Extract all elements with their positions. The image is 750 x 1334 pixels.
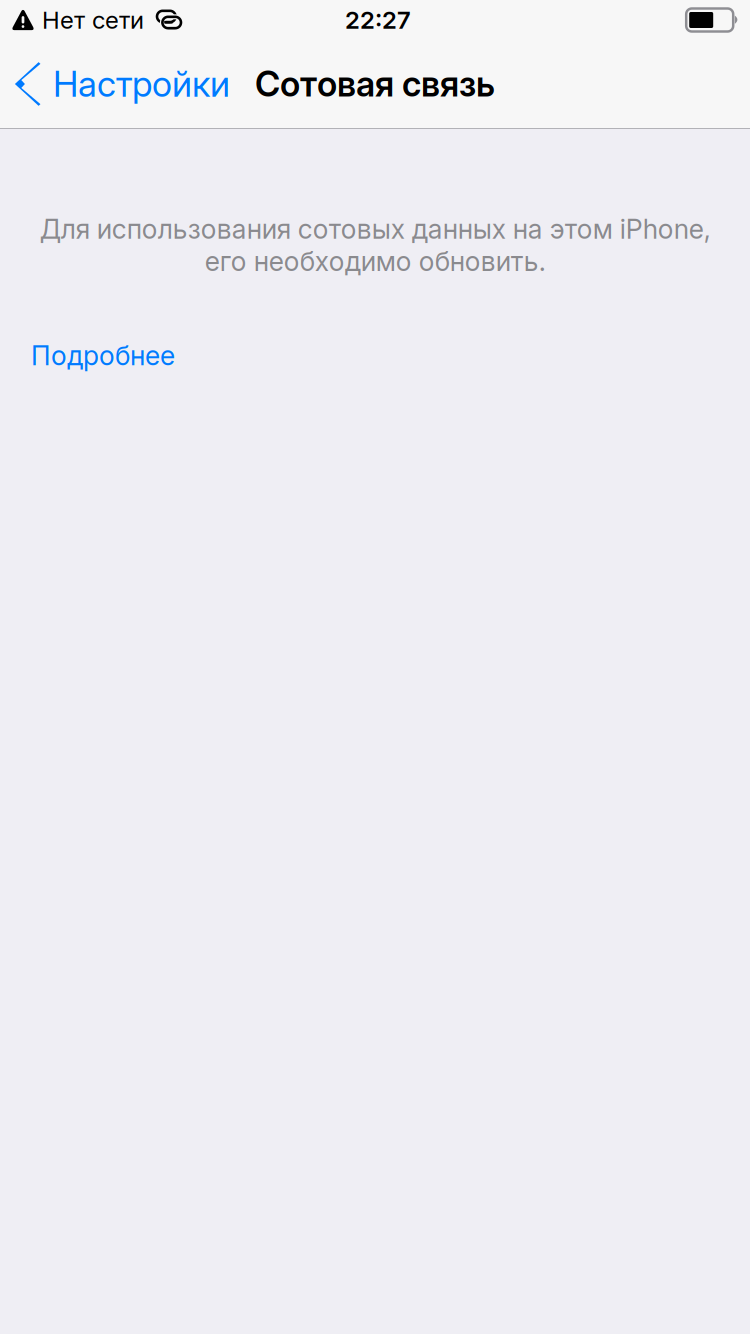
button[interactable]: Подробнее	[31, 339, 175, 372]
staticText: Подробнее	[31, 339, 175, 372]
staticText: Нет сети	[42, 5, 144, 34]
staticText: 22:27	[345, 5, 411, 34]
staticText: Для использования сотовых данных на этом…	[39, 213, 710, 277]
staticText: Сотовая связь	[255, 63, 495, 105]
staticText: Настройки	[53, 63, 230, 105]
button[interactable]: Настройки	[0, 40, 244, 128]
